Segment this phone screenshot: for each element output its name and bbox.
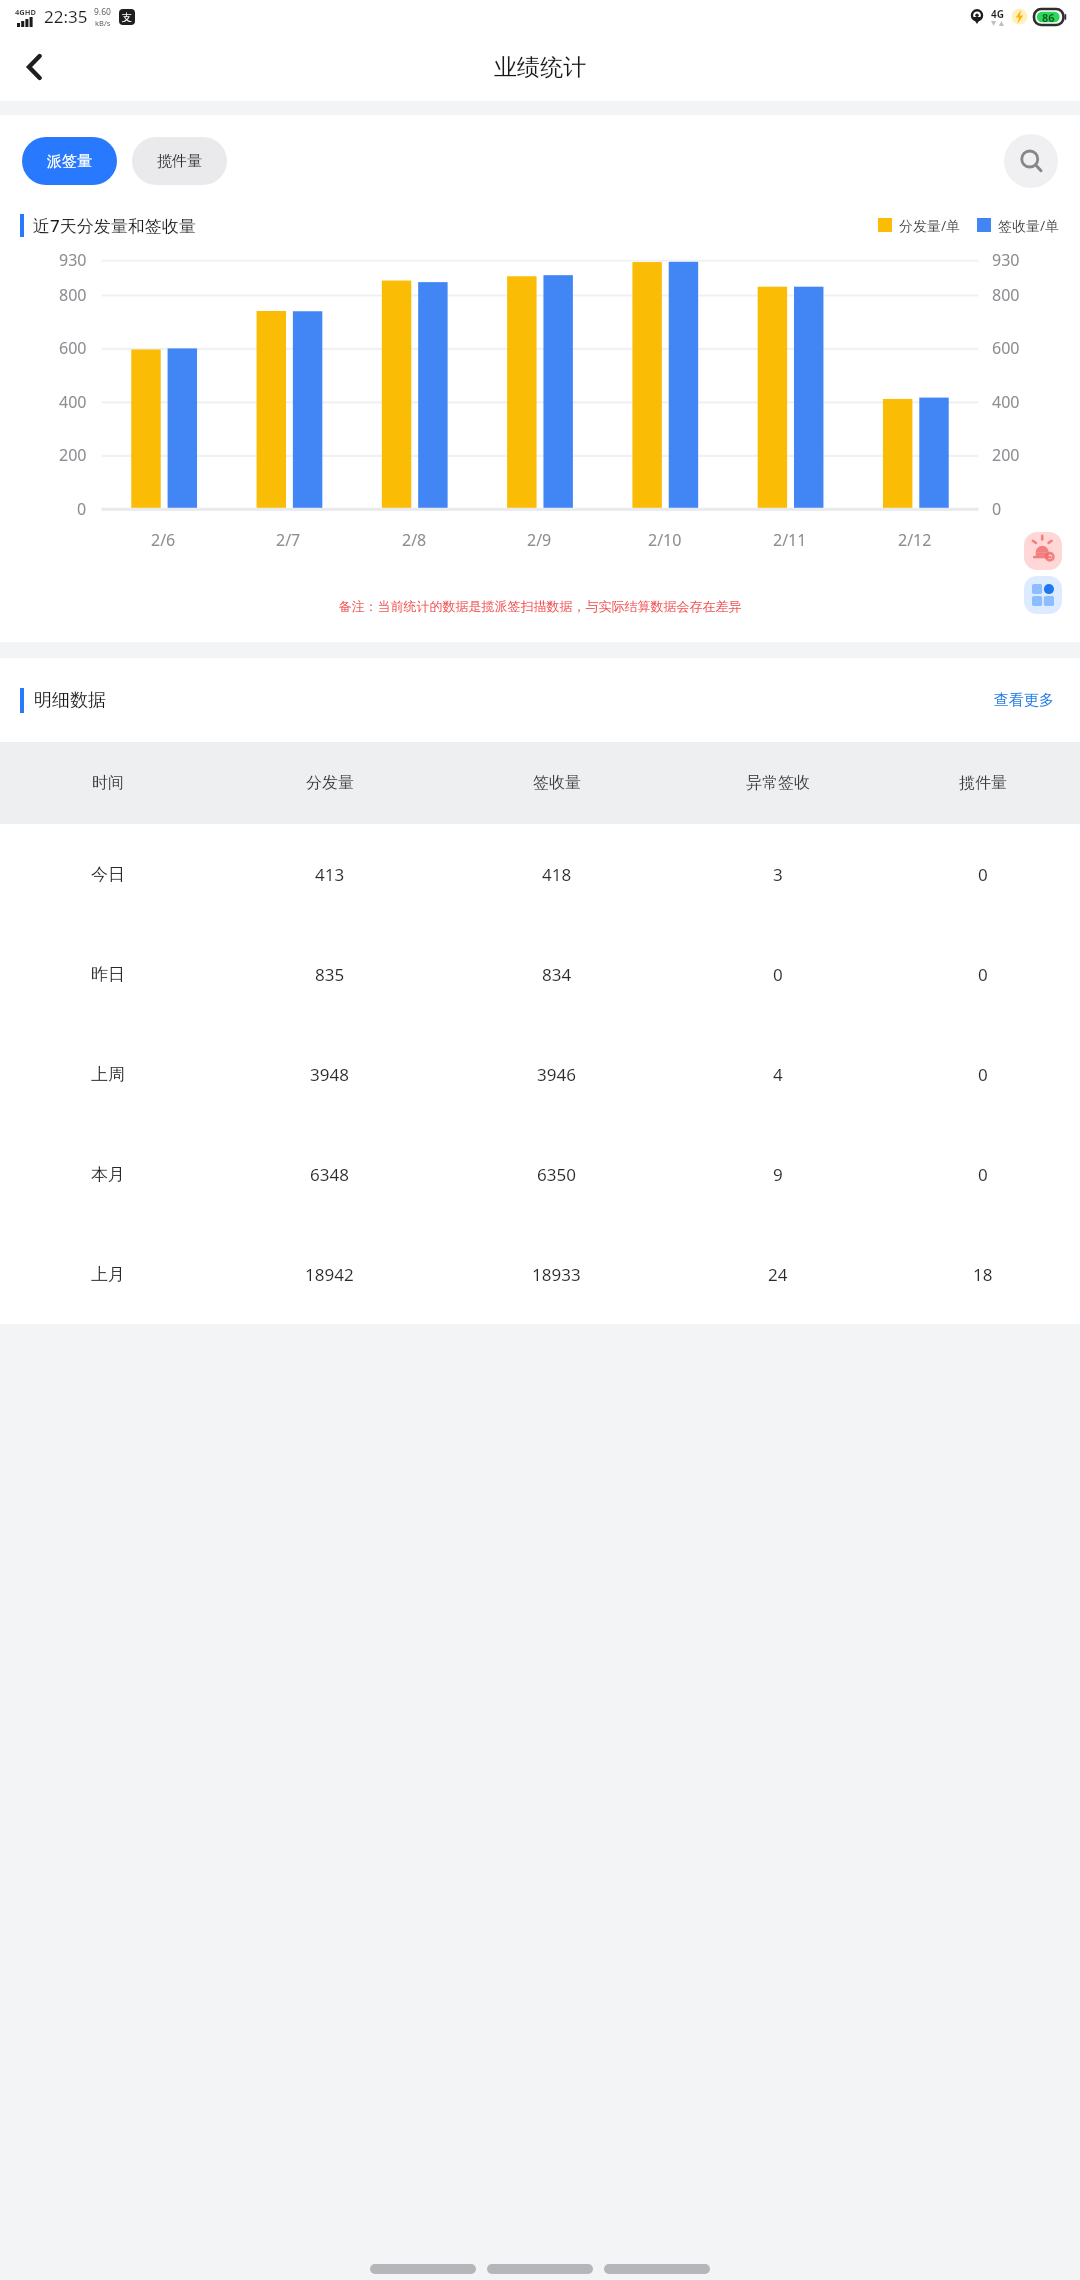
staticText: 418 [542, 863, 572, 886]
staticText: 0 [773, 963, 783, 986]
staticText: 4GHD [15, 7, 36, 17]
staticText: 3948 [310, 1063, 349, 1086]
staticText: 18933 [532, 1263, 581, 1286]
staticText: 分发量 [306, 773, 354, 793]
staticText: 2/12 [898, 529, 932, 551]
button[interactable]: Apps [1024, 576, 1062, 614]
staticText: 800 [992, 284, 1020, 306]
button[interactable]: Navigation button [604, 2264, 710, 2274]
button[interactable]: Navigation button [370, 2264, 476, 2274]
staticText: 834 [542, 963, 572, 986]
staticText: kB/s [95, 18, 111, 28]
staticText: 0 [992, 498, 1002, 520]
staticText: 3946 [537, 1063, 576, 1086]
staticText: 800 [59, 284, 87, 306]
staticText: 本月 [91, 1164, 125, 1185]
staticText: 400 [992, 391, 1020, 413]
staticText: 2/9 [527, 529, 552, 551]
staticText: 签收量 [533, 773, 581, 793]
staticText: 揽件量 [959, 773, 1007, 793]
staticText: 0 [978, 1063, 988, 1086]
button[interactable]: 上周 [0, 1024, 1080, 1124]
staticText: 2/11 [773, 529, 807, 551]
staticText: 查看更多 [994, 691, 1054, 710]
staticText: 6348 [310, 1163, 349, 1186]
button[interactable]: 派签量 [22, 137, 117, 185]
staticText: 0 [978, 963, 988, 986]
button[interactable]: 今日 [0, 824, 1080, 924]
staticText: 时间 [92, 773, 124, 793]
staticText: 签收量/单 [998, 216, 1060, 235]
staticText: 异常签收 [746, 773, 810, 793]
button[interactable]: 本月 [0, 1124, 1080, 1224]
staticText: 22:35 [44, 5, 88, 28]
staticText: 0 [978, 1163, 988, 1186]
staticText: 200 [59, 444, 87, 466]
staticText: 0 [978, 863, 988, 886]
staticText: 6350 [537, 1163, 576, 1186]
staticText: 9.60 [94, 6, 111, 18]
button[interactable]: 揽件量 [132, 137, 227, 185]
staticText: 930 [992, 249, 1020, 271]
staticText: 2/10 [648, 529, 682, 551]
button[interactable]: Search [1004, 134, 1058, 188]
staticText: 400 [59, 391, 87, 413]
staticText: 揽件量 [157, 152, 202, 171]
staticText: 分发量/单 [899, 216, 961, 235]
staticText: 2/7 [276, 529, 301, 551]
staticText: 600 [992, 337, 1020, 359]
button[interactable]: Back [6, 38, 64, 96]
staticText: 2/6 [151, 529, 176, 551]
staticText: 18942 [305, 1263, 354, 1286]
button[interactable]: 昨日 [0, 924, 1080, 1024]
staticText: 24 [768, 1263, 788, 1286]
staticText: 18 [973, 1263, 993, 1286]
staticText: 2/8 [402, 529, 427, 551]
staticText: 派签量 [47, 152, 92, 171]
button[interactable]: Navigation button [487, 2264, 593, 2274]
staticText: 今日 [91, 864, 125, 885]
button[interactable]: 查看更多 [988, 683, 1060, 718]
staticText: 支 [122, 11, 132, 24]
staticText: 600 [59, 337, 87, 359]
button[interactable]: 上月 [0, 1224, 1080, 1324]
staticText: 备注：当前统计的数据是揽派签扫描数据，与实际结算数据会存在差异 [14, 598, 1066, 614]
staticText: 4 [773, 1063, 783, 1086]
staticText: 近7天分发量和签收量 [33, 214, 196, 237]
staticText: 4G [991, 7, 1004, 21]
staticText: 413 [315, 863, 345, 886]
staticText: 200 [992, 444, 1020, 466]
staticText: 835 [315, 963, 345, 986]
staticText: 0 [77, 498, 87, 520]
staticText: 86 [1042, 10, 1055, 25]
staticText: 3 [773, 863, 783, 886]
staticText: 930 [59, 249, 87, 271]
staticText: 昨日 [91, 964, 125, 985]
staticText: 业绩统计 [494, 53, 586, 82]
staticText: 上月 [91, 1264, 125, 1285]
staticText: 9 [773, 1163, 783, 1186]
staticText: 明细数据 [34, 689, 106, 712]
button[interactable]: Alarm [1024, 532, 1062, 570]
staticText: 上周 [91, 1064, 125, 1085]
